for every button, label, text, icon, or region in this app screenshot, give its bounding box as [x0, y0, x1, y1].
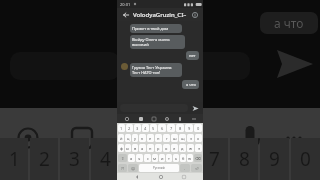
button[interactable]: 5: [150, 124, 157, 132]
staticText: д: [181, 146, 184, 151]
button[interactable]: Toolbar 4: [176, 115, 183, 122]
button[interactable]: Toolbar 2: [150, 115, 157, 122]
staticText: ф: [120, 146, 123, 151]
button[interactable]: х: [195, 134, 202, 142]
staticText: 9: [269, 146, 280, 172]
button[interactable]: ж: [187, 144, 194, 152]
button[interactable]: home: [157, 173, 164, 180]
button[interactable]: ⏎: [191, 164, 202, 172]
staticText: 6: [161, 126, 164, 131]
staticText: ь: [175, 156, 178, 161]
button[interactable]: э: [195, 144, 202, 152]
button[interactable]: recent: [180, 173, 187, 180]
button[interactable]: 3: [134, 124, 141, 132]
button[interactable]: ☺: [128, 164, 138, 172]
staticText: а что: [186, 82, 196, 87]
staticText: м: [153, 156, 157, 161]
staticText: 8: [239, 146, 250, 172]
button[interactable]: з: [187, 134, 194, 142]
button[interactable]: Avatar: [121, 63, 128, 70]
button[interactable]: в: [132, 144, 138, 152]
button[interactable]: Toolbar 1: [137, 115, 144, 122]
button[interactable]: Привет в твой дом: [130, 24, 182, 33]
staticText: нет: [189, 53, 196, 58]
staticText: 7: [209, 146, 220, 172]
staticText: 5: [152, 126, 155, 131]
button[interactable]: Toolbar 5: [190, 115, 197, 122]
button[interactable]: 4: [142, 124, 149, 132]
button[interactable]: нет: [186, 51, 199, 60]
button[interactable]: т: [166, 154, 172, 162]
button[interactable]: ы: [125, 144, 131, 152]
button[interactable]: н: [155, 134, 162, 142]
button[interactable]: е: [147, 134, 154, 142]
button[interactable]: ч: [136, 154, 143, 162]
button[interactable]: 0: [194, 124, 202, 132]
button[interactable]: б: [180, 154, 186, 162]
staticText: 1: [120, 126, 123, 131]
button[interactable]: с: [144, 154, 151, 162]
button[interactable]: ц: [125, 134, 131, 142]
button[interactable]: Chat info: [190, 10, 199, 19]
staticText: ?!: [121, 166, 124, 171]
staticText: 4: [144, 126, 147, 131]
button[interactable]: ?!: [118, 164, 127, 172]
button[interactable]: Send: [191, 104, 200, 113]
button[interactable]: 7: [167, 124, 175, 132]
button[interactable]: ь: [173, 154, 179, 162]
button[interactable]: Toolbar 0: [123, 115, 130, 122]
button[interactable]: а: [139, 144, 146, 152]
button[interactable]: ю: [187, 154, 193, 162]
staticText: с: [147, 156, 149, 161]
staticText: 1: [9, 146, 20, 172]
button[interactable]: к: [139, 134, 146, 142]
staticText: з: [190, 136, 192, 141]
button[interactable]: 1: [118, 124, 125, 132]
staticText: х: [197, 136, 200, 141]
button[interactable]: д: [179, 144, 186, 152]
button[interactable]: й: [118, 134, 124, 142]
staticText: 7: [170, 126, 173, 131]
button[interactable]: back: [133, 173, 140, 180]
staticText: е: [149, 136, 152, 141]
button[interactable]: 2: [126, 124, 133, 132]
button[interactable]: Back: [121, 10, 130, 19]
button[interactable]: я: [128, 154, 135, 162]
button[interactable]: Грузия Тест Украина Тест НАТО топ!: [130, 63, 182, 77]
button[interactable]: 8: [176, 124, 184, 132]
button[interactable]: л: [171, 144, 178, 152]
staticText: Выйду Олега очень высокий: [132, 37, 183, 47]
button[interactable]: ⌫: [194, 154, 202, 162]
button[interactable]: ф: [118, 144, 124, 152]
staticText: 2: [39, 146, 50, 172]
button[interactable]: VolodyaGruzin_CI–: [133, 11, 190, 19]
button[interactable]: г: [163, 134, 170, 142]
staticText: у: [134, 136, 137, 141]
button[interactable]: щ: [179, 134, 186, 142]
staticText: 3: [136, 126, 139, 131]
button[interactable]: ⇧: [118, 154, 127, 162]
button[interactable]: у: [132, 134, 138, 142]
staticText: о: [165, 146, 168, 151]
button[interactable]: Toolbar 3: [163, 115, 170, 122]
staticText: а: [141, 146, 144, 151]
staticText: 20:01: [120, 2, 131, 7]
button[interactable]: ш: [171, 134, 178, 142]
staticText: э: [198, 146, 200, 151]
button[interactable]: 9: [185, 124, 193, 132]
button[interactable]: а что: [182, 80, 199, 89]
staticText: 0: [197, 126, 200, 131]
staticText: г: [166, 136, 168, 141]
button[interactable]: Русский: [139, 164, 179, 172]
button[interactable]: р: [155, 144, 162, 152]
staticText: Привет в твой дом: [132, 26, 169, 31]
button[interactable]: 6: [158, 124, 166, 132]
button[interactable]: о: [163, 144, 170, 152]
button[interactable]: и: [159, 154, 165, 162]
button[interactable]: м: [152, 154, 158, 162]
staticText: к: [141, 136, 144, 141]
button[interactable]: Выйду Олега очень высокий: [130, 35, 185, 49]
button[interactable]: п: [147, 144, 154, 152]
